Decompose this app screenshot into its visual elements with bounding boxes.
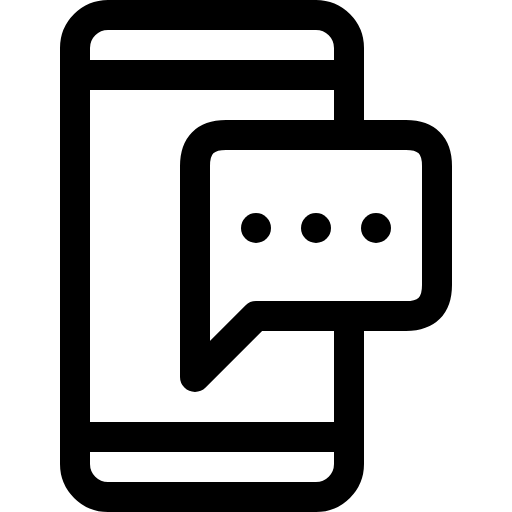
- button[interactable]: Messages on phone: [0, 0, 512, 512]
